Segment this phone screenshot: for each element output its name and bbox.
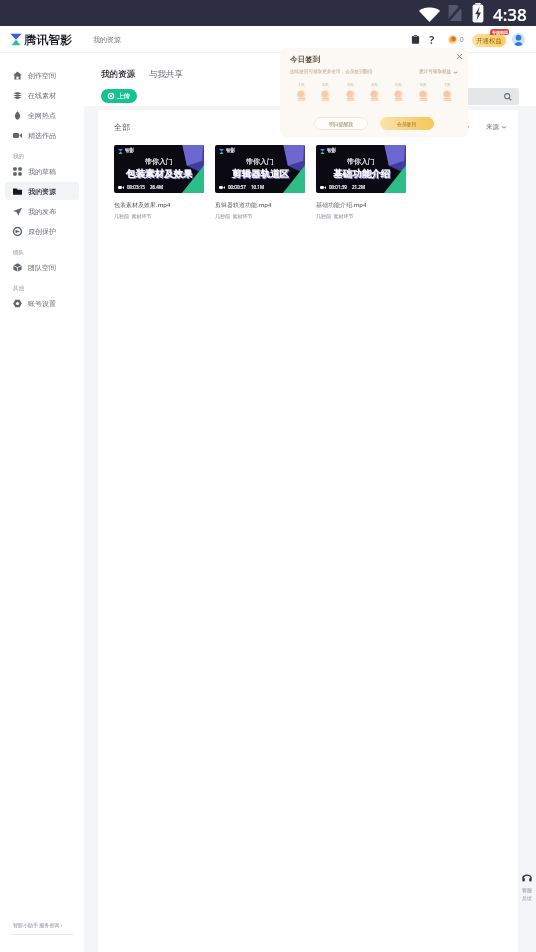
- button[interactable]: Close: [456, 53, 463, 60]
- staticText: 今日签到: [290, 55, 320, 64]
- button[interactable]: 原创保护: [5, 222, 79, 240]
- staticText: ?: [429, 32, 435, 46]
- staticText: 剪辑器轨道功能.mp4: [215, 201, 272, 209]
- button[interactable]: 上传: [101, 89, 137, 103]
- staticText: 带你入门: [145, 157, 173, 166]
- button[interactable]: 明日提醒我: [314, 117, 368, 130]
- staticText: 专属权益: [492, 30, 508, 35]
- button[interactable]: 团队空间: [5, 258, 79, 276]
- staticText: 7天: [444, 82, 451, 88]
- staticText: 4天: [371, 82, 378, 88]
- staticText: 21.2M: [352, 184, 366, 190]
- button[interactable]: 全网热点: [5, 106, 79, 124]
- staticText: 我的发布: [28, 207, 56, 216]
- staticText: 创作空间: [28, 71, 56, 80]
- staticText: 团队: [13, 249, 24, 256]
- button[interactable]: 智影: [316, 145, 406, 220]
- button[interactable]: 来源: [486, 123, 507, 131]
- staticText: 累计可领取权益: [419, 69, 452, 75]
- button[interactable]: 账号设置: [5, 294, 79, 312]
- staticText: 10.1M: [251, 184, 265, 190]
- button[interactable]: Help: [425, 32, 439, 46]
- button[interactable]: 我的资源: [101, 69, 135, 80]
- staticText: 包装素材及效果.mp4: [114, 201, 171, 209]
- staticText: 连续签到可领取更多金币，会员签到翻倍: [290, 69, 373, 75]
- staticText: 00:01:39: [329, 184, 347, 190]
- staticText: 剪辑器轨道区: [232, 168, 289, 180]
- button[interactable]: 我的草稿: [5, 162, 79, 180]
- staticText: 明日提醒我: [329, 121, 353, 127]
- staticText: 原创保护: [28, 227, 56, 236]
- staticText: 智影: [327, 148, 336, 154]
- button[interactable]: 我的资源: [5, 182, 79, 200]
- staticText: 2天: [322, 82, 329, 88]
- button[interactable]: 智影: [215, 145, 305, 220]
- staticText: 团队空间: [28, 263, 56, 272]
- staticText: 反馈: [522, 895, 532, 901]
- button[interactable]: 在线素材: [5, 86, 79, 104]
- button[interactable]: 智影: [114, 145, 204, 220]
- button[interactable]: 创作空间: [5, 66, 79, 84]
- staticText: 腾讯智影: [24, 32, 72, 47]
- button[interactable]: Tasks: [407, 31, 423, 47]
- staticText: 6天: [420, 82, 427, 88]
- staticText: 账号设置: [28, 299, 56, 308]
- button[interactable]: Coins: [448, 35, 464, 44]
- staticText: 5天: [395, 82, 402, 88]
- staticText: 带你入门: [246, 157, 274, 166]
- staticText: 26.4M: [150, 184, 164, 190]
- staticText: 开通权益: [476, 37, 502, 45]
- button[interactable]: 会员签到: [380, 117, 434, 130]
- staticText: 3天: [347, 82, 354, 88]
- button[interactable]: Search: [417, 88, 519, 105]
- staticText: 几秒前 素材环节: [316, 213, 354, 220]
- staticText: 基础功能介绍.mp4: [316, 201, 367, 209]
- button[interactable]: 我的资源: [93, 35, 121, 44]
- staticText: 几秒前 素材环节: [215, 213, 253, 220]
- staticText: 在线素材: [28, 91, 56, 100]
- staticText: 基础功能介绍: [333, 168, 390, 180]
- staticText: 智影: [226, 148, 235, 154]
- staticText: 客服: [522, 887, 532, 893]
- staticText: 包装素材及效果: [126, 168, 193, 180]
- staticText: 0: [460, 35, 464, 44]
- staticText: 4:38: [493, 3, 527, 26]
- staticText: 00:03:15: [127, 184, 145, 190]
- staticText: 我的资源: [28, 187, 56, 196]
- staticText: 全部: [114, 122, 130, 132]
- staticText: 剪辑器轨道区: [233, 169, 290, 181]
- staticText: 1天: [298, 82, 305, 88]
- button[interactable]: 开通权益: [472, 34, 506, 47]
- button[interactable]: 与我共享: [149, 69, 183, 80]
- staticText: 带你入门: [347, 157, 375, 166]
- button[interactable]: 我的发布: [5, 202, 79, 220]
- staticText: 全网热点: [28, 111, 56, 120]
- staticText: 我的: [13, 153, 24, 160]
- button[interactable]: 智影小助手 服务咨询 ›: [13, 922, 63, 929]
- staticText: 上传: [117, 92, 130, 100]
- staticText: 会员签到: [397, 121, 417, 127]
- staticText: 几秒前 素材环节: [114, 213, 152, 220]
- button[interactable]: 累计可领取权益: [419, 69, 458, 75]
- staticText: 包装素材及效果: [127, 169, 194, 181]
- staticText: 其他: [13, 285, 24, 292]
- staticText: 00:00:57: [228, 184, 246, 190]
- button[interactable]: 时间: [449, 123, 470, 131]
- staticText: 来源: [486, 123, 499, 131]
- button[interactable]: Profile: [512, 33, 525, 46]
- button[interactable]: 精选作品: [5, 126, 79, 144]
- staticText: 智影小助手 服务咨询 ›: [13, 922, 63, 929]
- staticText: 精选作品: [28, 131, 56, 140]
- staticText: 智影: [125, 148, 134, 154]
- button[interactable]: Customer service: [518, 874, 536, 901]
- staticText: 基础功能介绍: [334, 169, 391, 181]
- staticText: 我的草稿: [28, 167, 56, 176]
